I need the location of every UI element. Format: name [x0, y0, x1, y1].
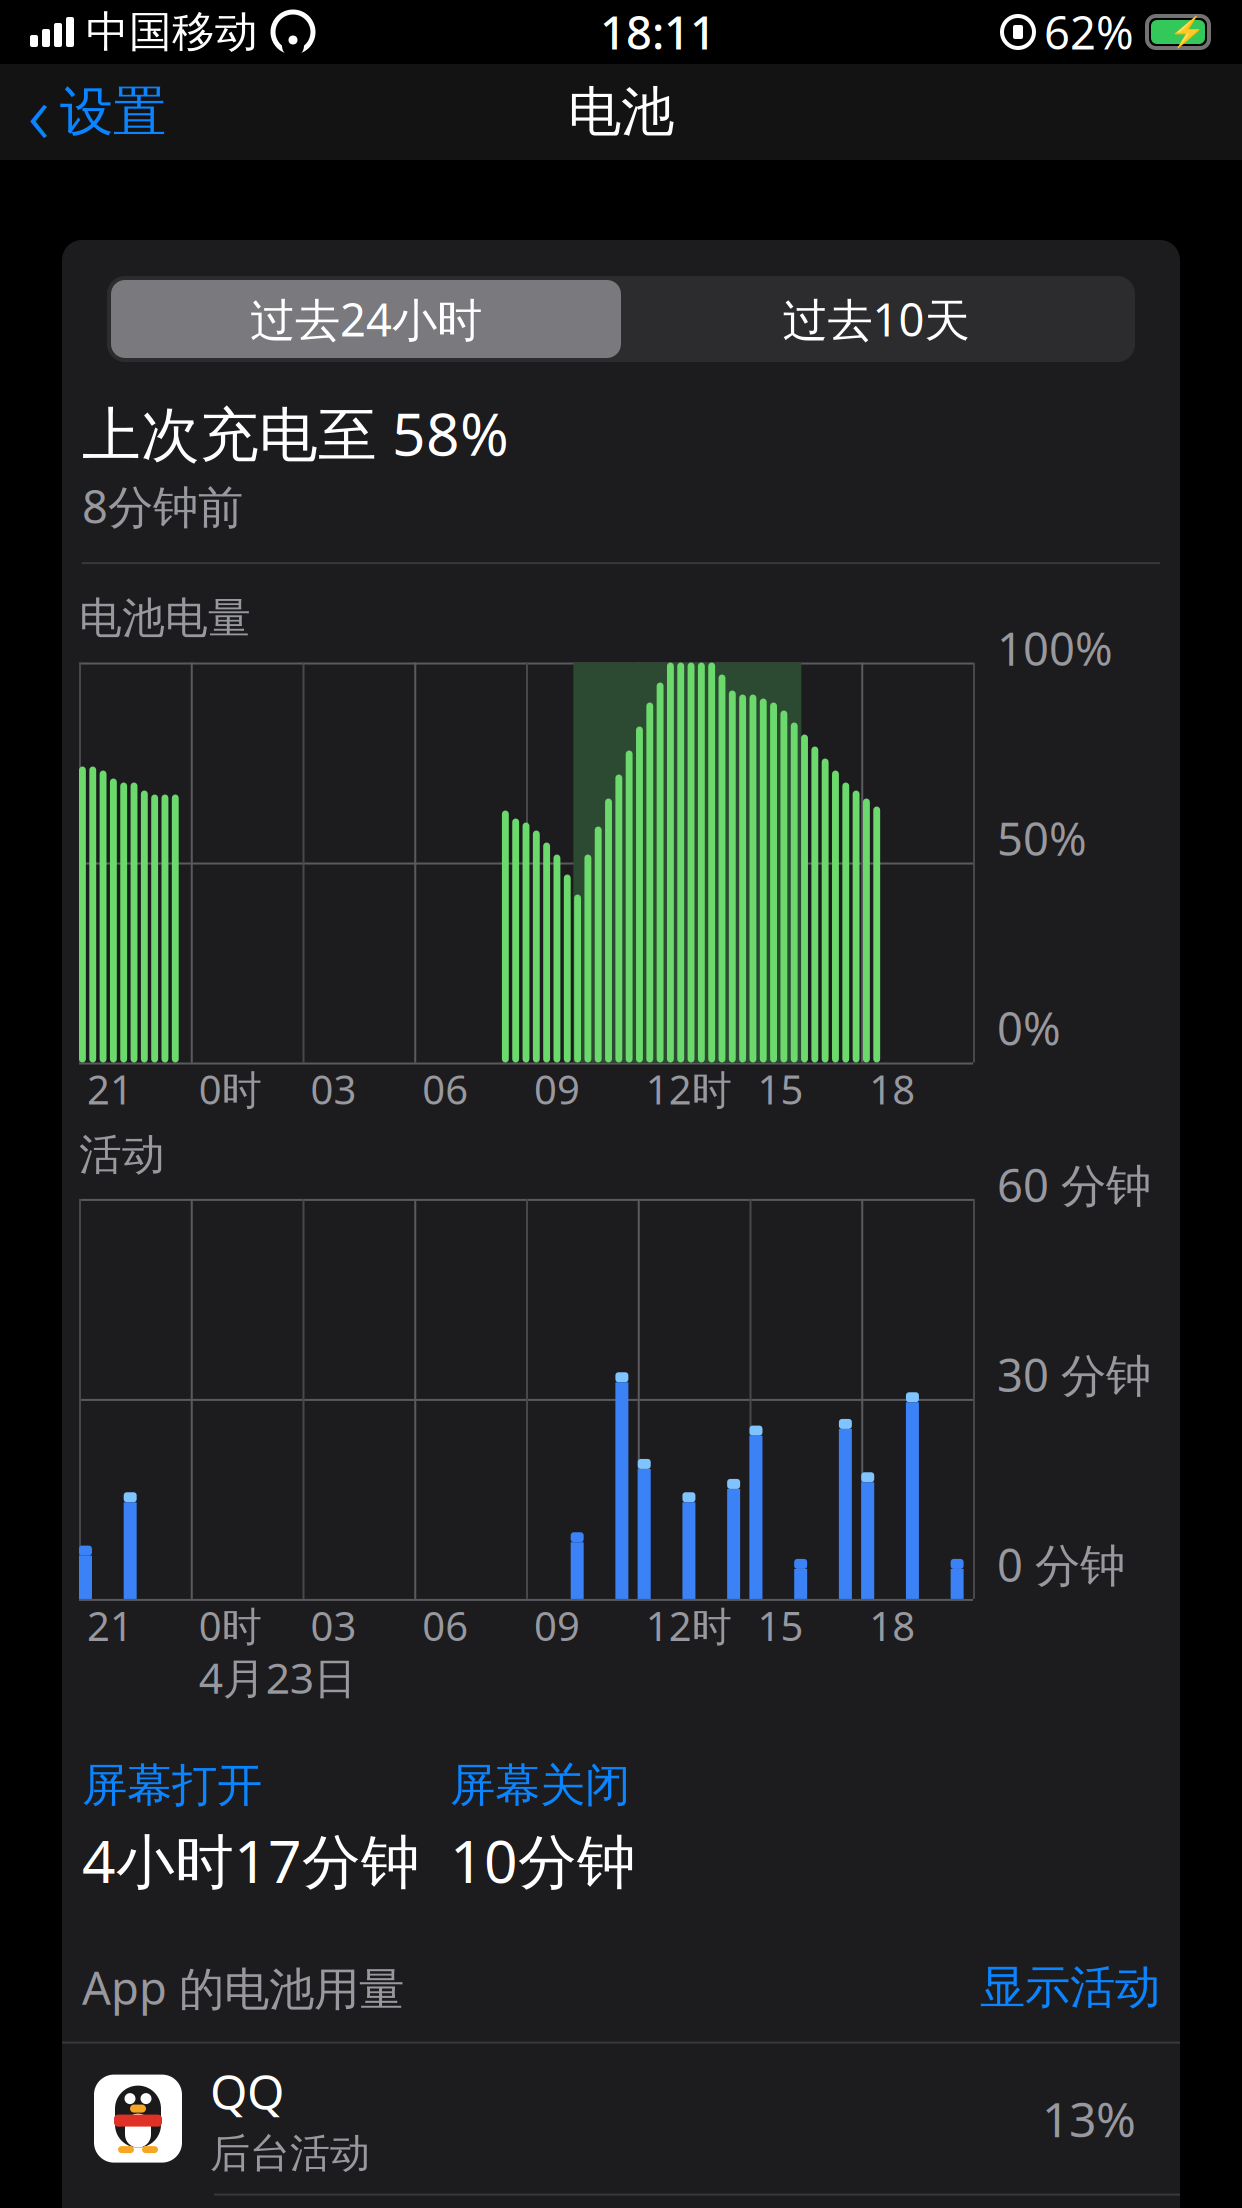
staticText: 06: [422, 1599, 468, 1652]
staticText: 21: [87, 1062, 133, 1116]
staticText: 8分钟前: [82, 476, 243, 536]
staticText: 18: [869, 1062, 915, 1116]
staticText: 12时: [646, 1062, 732, 1116]
staticText: 活动: [79, 1128, 165, 1181]
staticText: 电池: [568, 79, 674, 145]
staticText: App 的电池用量: [82, 1957, 404, 2018]
staticText: 18: [869, 1599, 915, 1652]
staticText: 上次充电至 58%: [82, 394, 509, 472]
staticText: 过去10天: [782, 289, 969, 349]
staticText: ⚡: [1169, 15, 1206, 49]
staticText: 0%: [997, 998, 1061, 1058]
button[interactable]: 显示活动: [980, 1959, 1160, 2015]
button[interactable]: 过去24小时: [111, 280, 621, 358]
staticText: 30 分钟: [997, 1344, 1151, 1405]
staticText: 50%: [997, 808, 1087, 868]
staticText: 21: [87, 1599, 133, 1652]
staticText: 15: [757, 1062, 803, 1116]
staticText: 显示活动: [980, 1959, 1160, 2015]
staticText: 0时: [199, 1599, 262, 1652]
staticText: 100%: [997, 618, 1113, 678]
staticText: 03: [310, 1062, 356, 1116]
staticText: 12时: [646, 1599, 732, 1652]
staticText: 60 分钟: [997, 1154, 1151, 1215]
staticText: 15: [757, 1599, 803, 1652]
button[interactable]: QQ: [62, 2044, 1180, 2194]
staticText: 电池电量: [79, 592, 251, 644]
staticText: QQ: [210, 2059, 284, 2123]
staticText: 4小时17分钟: [82, 1821, 420, 1899]
staticText: 过去24小时: [250, 289, 482, 349]
staticText: 0 分钟: [997, 1534, 1125, 1594]
staticText: 屏幕关闭: [450, 1758, 630, 1813]
staticText: 中国移动: [86, 6, 258, 58]
staticText: 后台活动: [210, 2129, 370, 2178]
staticText: 03: [310, 1599, 356, 1652]
staticText: 62%: [1044, 2, 1134, 62]
staticText: 0时: [199, 1062, 262, 1116]
staticText: 06: [422, 1062, 468, 1116]
staticText: 18:11: [600, 2, 716, 62]
button[interactable]: 过去10天: [621, 280, 1131, 358]
button[interactable]: ‹: [0, 49, 166, 175]
staticText: 09: [534, 1599, 580, 1652]
staticText: ‹: [28, 57, 50, 167]
staticText: 屏幕打开: [82, 1758, 262, 1813]
staticText: 09: [534, 1062, 580, 1116]
staticText: 设置: [60, 79, 166, 145]
staticText: 4月23日: [199, 1649, 357, 1706]
staticText: 13%: [1042, 2087, 1136, 2150]
staticText: 10分钟: [450, 1821, 636, 1899]
